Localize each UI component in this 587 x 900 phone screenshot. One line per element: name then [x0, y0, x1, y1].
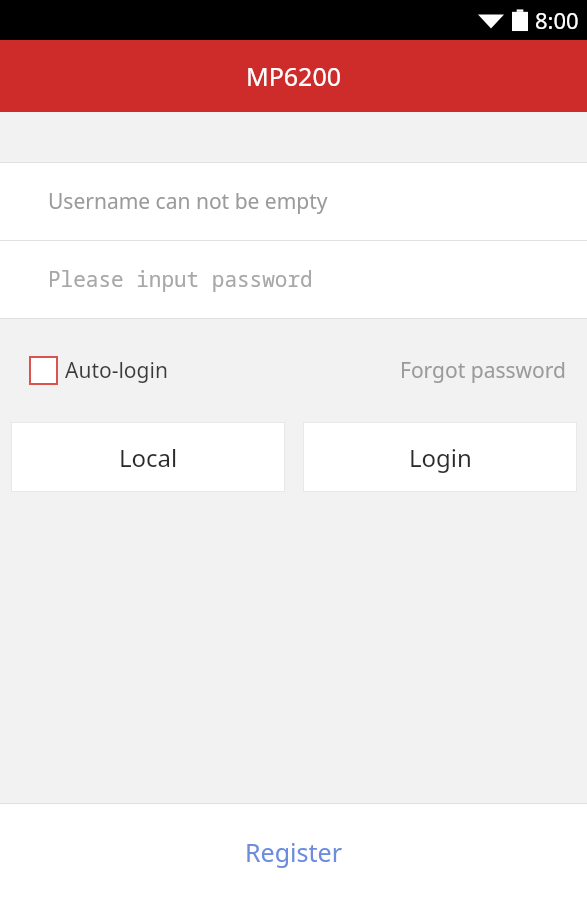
staticText: Login — [409, 441, 472, 474]
button[interactable]: Local — [11, 422, 285, 492]
button[interactable]: Please input password — [0, 241, 587, 318]
button[interactable]: Login — [303, 422, 577, 492]
staticText: MP6200 — [246, 59, 342, 93]
staticText: Auto-login — [65, 356, 168, 385]
staticText: Forgot password — [400, 356, 566, 385]
button[interactable]: Forgot password — [396, 352, 570, 389]
button[interactable]: Username can not be empty — [0, 163, 587, 240]
staticText: Username can not be empty — [48, 187, 328, 216]
staticText: Register — [245, 835, 342, 869]
button[interactable]: Auto-login — [29, 356, 168, 385]
staticText: Local — [119, 441, 178, 474]
staticText: 8:00 — [535, 5, 579, 35]
button[interactable]: Register — [0, 804, 587, 900]
staticText: Please input password — [48, 265, 313, 294]
